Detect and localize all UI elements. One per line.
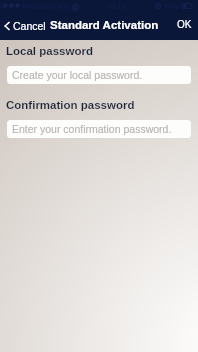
button[interactable]: OK <box>175 17 194 32</box>
button[interactable]: Cancel <box>3 18 47 34</box>
button[interactable]: Enter your confirmation password. <box>7 120 191 138</box>
staticText: Cancel <box>13 20 46 32</box>
staticText: OK <box>177 19 192 30</box>
staticText: Create your local password. <box>12 69 143 81</box>
staticText: Vodafone EG <box>25 2 70 10</box>
staticText: Confirmation password <box>6 99 135 112</box>
staticText: Local password <box>6 45 93 58</box>
staticText: 34% <box>163 2 179 10</box>
staticText: Enter your confirmation password. <box>12 123 172 135</box>
staticText: 30:13 <box>107 2 126 10</box>
button[interactable]: Create your local password. <box>7 66 191 84</box>
staticText: Standard Activation <box>50 19 159 32</box>
